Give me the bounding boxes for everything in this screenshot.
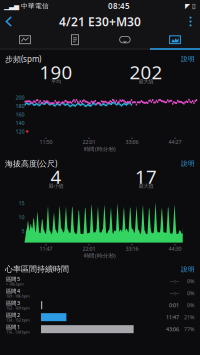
staticText: 說明 bbox=[181, 265, 195, 273]
staticText: 步頻(spm) bbox=[5, 54, 41, 64]
staticText: 說明 bbox=[181, 159, 195, 168]
staticText: 77% bbox=[184, 326, 194, 333]
staticText: 區間 3 bbox=[6, 299, 20, 306]
staticText: > 186 bpm bbox=[6, 281, 24, 287]
staticText: 5 bbox=[21, 228, 24, 235]
staticText: 33:16 bbox=[125, 245, 138, 252]
button[interactable]: 說明 bbox=[181, 55, 195, 63]
staticText: ▁▃▅ 中華電信 bbox=[4, 2, 53, 10]
staticText: 最大值 bbox=[138, 78, 153, 85]
staticText: 說明 bbox=[181, 55, 195, 63]
staticText: 4/21 E30+M30 bbox=[59, 13, 141, 29]
button[interactable]: Summary bbox=[0, 31, 50, 48]
staticText: 海拔高度(公尺) bbox=[5, 158, 57, 169]
staticText: 17 bbox=[135, 164, 157, 189]
staticText: 44:27 bbox=[168, 138, 181, 146]
staticText: 0:01 bbox=[169, 302, 179, 309]
staticText: 區間 2 bbox=[6, 311, 20, 318]
staticText: 10 bbox=[18, 214, 24, 221]
staticText: 0% bbox=[187, 302, 194, 309]
button[interactable]: Charts bbox=[150, 31, 200, 48]
button[interactable]: Laps bbox=[100, 31, 150, 48]
staticText: 134 - 152 bpm bbox=[6, 317, 30, 323]
button[interactable]: Splits bbox=[50, 31, 100, 48]
staticText: 時間 (時:分:秒) bbox=[84, 252, 116, 259]
staticText: 0% bbox=[187, 278, 194, 285]
staticText: 21% bbox=[184, 314, 194, 321]
staticText: 15 bbox=[18, 200, 24, 207]
staticText: ◤ ▯ bbox=[185, 2, 196, 10]
staticText: 最小值 bbox=[48, 183, 63, 189]
staticText: 160 bbox=[15, 111, 24, 118]
staticText: 平均 bbox=[51, 78, 61, 85]
staticText: 最大值 bbox=[138, 183, 153, 189]
staticText: --:-- bbox=[170, 278, 179, 285]
staticText: 44:30 bbox=[168, 245, 181, 252]
button[interactable]: Back bbox=[0, 12, 18, 31]
staticText: --:-- bbox=[170, 290, 179, 297]
staticText: 0% bbox=[187, 290, 194, 297]
staticText: 43:06 bbox=[166, 326, 179, 333]
staticText: 時間 (時:分:秒) bbox=[84, 145, 116, 153]
staticText: 202 bbox=[129, 60, 162, 84]
staticText: 心率區間持續時間 bbox=[5, 264, 69, 274]
staticText: 區間 4 bbox=[6, 287, 20, 294]
staticText: 區間 5 bbox=[6, 275, 20, 282]
staticText: 4 bbox=[50, 164, 61, 189]
staticText: 116 - 134 bpm bbox=[6, 329, 30, 335]
staticText: 169 - 186 bpm bbox=[6, 293, 30, 299]
button[interactable]: 說明 bbox=[181, 265, 195, 273]
staticText: 11:47 bbox=[166, 314, 179, 321]
staticText: 200 bbox=[15, 94, 24, 101]
staticText: 22:01 bbox=[82, 245, 95, 252]
staticText: 11:47 bbox=[39, 245, 52, 252]
staticText: 140 bbox=[15, 119, 24, 127]
button[interactable]: 說明 bbox=[181, 159, 195, 168]
staticText: 08:45 bbox=[108, 1, 130, 11]
staticText: 180 bbox=[15, 102, 24, 110]
staticText: 152 - 169 bpm bbox=[6, 305, 30, 311]
staticText: 22:01 bbox=[82, 138, 95, 146]
staticText: 33:06 bbox=[125, 138, 138, 146]
staticText: 120 bbox=[15, 128, 24, 135]
staticText: 190 bbox=[39, 60, 72, 84]
staticText: 11:50 bbox=[39, 138, 52, 146]
button[interactable]: More options bbox=[181, 12, 200, 31]
staticText: 區間 1 bbox=[6, 323, 20, 330]
